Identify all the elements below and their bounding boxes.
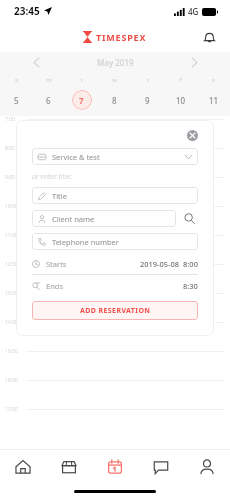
staticText: m: [46, 76, 52, 84]
staticText: 8:00: [5, 145, 26, 152]
staticText: 11:00: [5, 232, 26, 239]
staticText: Telephone number: [52, 237, 119, 247]
button[interactable]: Next month: [186, 54, 202, 70]
staticText: 12:00: [5, 261, 26, 268]
staticText: Ends: [46, 281, 64, 291]
staticText: 14:00: [5, 319, 26, 326]
staticText: 13:00: [5, 290, 26, 297]
button[interactable]: Notifications: [196, 24, 222, 50]
staticText: s: [212, 76, 215, 84]
button[interactable]: 6: [32, 89, 65, 111]
button[interactable]: Telephone number: [32, 233, 198, 250]
button[interactable]: Close: [187, 130, 198, 141]
staticText: s: [15, 76, 18, 84]
button[interactable]: Calendar: [92, 450, 138, 484]
staticText: ADD RESERVATION: [80, 306, 151, 316]
button[interactable]: 11: [197, 89, 230, 111]
staticText: May 2019: [97, 57, 134, 68]
button[interactable]: 7: [65, 89, 98, 111]
staticText: 4G: [188, 6, 199, 17]
button[interactable]: Client name: [32, 210, 176, 227]
staticText: f: [179, 76, 182, 84]
button[interactable]: Starts: [32, 259, 198, 275]
staticText: 16:00: [5, 377, 26, 384]
staticText: t: [80, 76, 83, 84]
button[interactable]: Store: [46, 450, 92, 484]
staticText: w: [112, 76, 117, 84]
button[interactable]: Service & test: [32, 148, 198, 165]
button[interactable]: Profile: [184, 450, 230, 484]
button[interactable]: Ends: [32, 281, 198, 291]
staticText: 15:00: [5, 348, 26, 355]
staticText: 8: [112, 95, 117, 106]
button[interactable]: 9: [131, 89, 164, 111]
staticText: 6: [46, 95, 51, 106]
staticText: or enter title:: [32, 172, 72, 181]
button[interactable]: ADD RESERVATION: [32, 301, 198, 320]
staticText: 7: [79, 95, 84, 106]
button[interactable]: Home: [0, 450, 46, 484]
staticText: 17:00: [5, 406, 26, 413]
staticText: 8:30: [183, 281, 198, 291]
staticText: Service & test: [52, 152, 100, 162]
staticText: 2019-05-08 8:00: [140, 259, 198, 269]
staticText: t: [146, 76, 149, 84]
button[interactable]: Previous month: [28, 54, 44, 70]
button[interactable]: Search client: [181, 210, 198, 227]
staticText: 9: [145, 95, 150, 106]
button[interactable]: 5: [0, 89, 32, 111]
staticText: Starts: [46, 259, 67, 269]
staticText: 5: [14, 95, 19, 106]
staticText: 10: [176, 95, 186, 106]
staticText: Client name: [52, 214, 95, 224]
button[interactable]: Title: [32, 187, 198, 204]
staticText: TIMESPEX: [96, 31, 147, 43]
staticText: 10:00: [5, 203, 26, 210]
staticText: 23:45: [14, 4, 40, 18]
button[interactable]: Messages: [138, 450, 184, 484]
staticText: 9:00: [5, 174, 26, 181]
staticText: 7:00: [5, 116, 26, 123]
staticText: Title: [52, 191, 67, 201]
button[interactable]: 10: [164, 89, 197, 111]
staticText: 11: [209, 95, 219, 106]
button[interactable]: 8: [98, 89, 131, 111]
